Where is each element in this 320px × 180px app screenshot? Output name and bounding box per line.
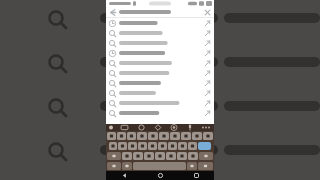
button[interactable]: settings [166,124,182,131]
button[interactable]: Insert suggestion [203,29,212,38]
button[interactable] [178,142,187,150]
button[interactable]: Insert suggestion [106,88,214,98]
button[interactable]: Insert suggestion [203,99,212,108]
button[interactable] [109,142,117,150]
button[interactable] [158,142,167,150]
button[interactable]: Shift [107,152,121,160]
button[interactable]: Emoji [122,162,132,170]
button[interactable]: Insert suggestion [106,18,214,28]
button[interactable] [188,152,198,160]
button[interactable]: Back [106,7,214,17]
button[interactable]: Insert suggestion [106,68,214,78]
button[interactable]: Insert suggestion [203,109,212,118]
button[interactable]: Symbols [107,162,121,170]
button[interactable] [159,132,169,140]
button[interactable]: Insert suggestion [106,38,214,48]
button[interactable]: GIF [116,124,133,131]
button[interactable] [181,132,191,140]
button[interactable] [138,142,147,150]
button[interactable] [137,132,147,140]
button[interactable] [188,142,197,150]
button[interactable]: Insert suggestion [203,79,212,88]
button[interactable]: Insert suggestion [203,59,212,68]
button[interactable] [177,152,187,160]
button[interactable]: Period [187,162,197,170]
button[interactable] [107,132,116,140]
button[interactable]: Insert suggestion [203,89,212,98]
button[interactable] [148,142,157,150]
button[interactable] [117,132,126,140]
button[interactable] [144,152,154,160]
button[interactable]: Space [133,162,186,170]
button[interactable] [148,132,158,140]
button[interactable]: Home [142,171,178,180]
button[interactable]: Insert suggestion [203,69,212,78]
button[interactable]: Insert suggestion [106,48,214,58]
button[interactable] [168,142,177,150]
button[interactable] [128,142,137,150]
button[interactable]: sticker [133,124,150,131]
button[interactable] [133,152,143,160]
button[interactable] [166,152,176,160]
button[interactable]: Back [106,171,142,180]
button[interactable] [203,132,213,140]
button[interactable]: Insert suggestion [106,98,214,108]
button[interactable]: Enter [198,162,213,170]
button[interactable] [155,152,165,160]
button[interactable]: Insert suggestion [203,49,212,58]
button[interactable]: Insert suggestion [106,78,214,88]
button[interactable]: Insert suggestion [203,19,212,28]
button[interactable] [118,142,127,150]
button[interactable]: Back [108,8,117,17]
button[interactable]: Insert suggestion [106,58,214,68]
button[interactable]: theme [150,124,166,131]
button[interactable] [122,152,132,160]
button[interactable]: Insert suggestion [106,28,214,38]
button[interactable]: mic [182,124,198,131]
button[interactable]: Recents [178,171,214,180]
button[interactable] [127,132,136,140]
button[interactable]: Search [198,142,211,150]
button[interactable]: Gboard menu [106,124,116,131]
button[interactable] [192,132,202,140]
button[interactable]: Clear query [203,8,212,17]
button[interactable]: Backspace [199,152,213,160]
button[interactable]: more [198,124,214,131]
button[interactable] [170,132,180,140]
button[interactable]: Insert suggestion [203,39,212,48]
button[interactable]: Insert suggestion [106,108,214,118]
